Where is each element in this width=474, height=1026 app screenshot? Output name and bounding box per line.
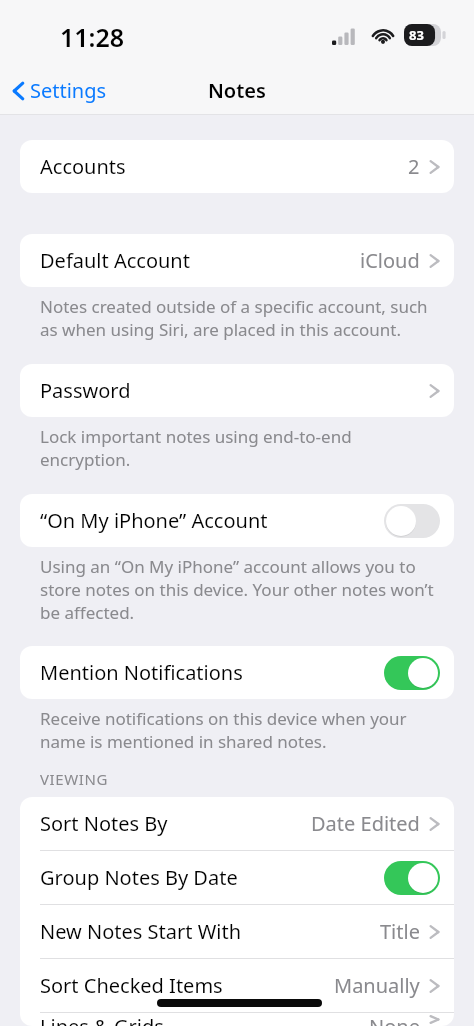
staticText: 11:28 bbox=[60, 20, 125, 54]
staticText: Password bbox=[40, 377, 131, 404]
button[interactable]: Default Account bbox=[20, 234, 454, 287]
staticText: iCloud bbox=[360, 247, 420, 274]
staticText: Group Notes By Date bbox=[40, 864, 238, 891]
button[interactable]: Password bbox=[20, 364, 454, 417]
button[interactable]: Toggle on bbox=[384, 861, 440, 895]
button[interactable]: Toggle off bbox=[384, 504, 440, 538]
staticText: Using an “On My iPhone” account allows y… bbox=[40, 555, 438, 624]
button[interactable]: Sort Checked Items bbox=[20, 959, 454, 1012]
staticText: Lines & Grids bbox=[40, 1013, 164, 1026]
staticText: Notes created outside of a specific acco… bbox=[40, 295, 438, 341]
staticText: Default Account bbox=[40, 247, 190, 274]
button[interactable]: “On My iPhone” Account bbox=[20, 494, 454, 547]
staticText: 2 bbox=[408, 153, 420, 180]
staticText: Date Edited bbox=[311, 810, 420, 837]
button[interactable]: Settings bbox=[0, 71, 117, 110]
staticText: None bbox=[369, 1013, 420, 1026]
staticText: Accounts bbox=[40, 153, 126, 180]
button[interactable]: Accounts bbox=[20, 140, 454, 193]
button[interactable]: Mention Notifications bbox=[20, 646, 454, 699]
staticText: “On My iPhone” Account bbox=[40, 507, 268, 534]
button[interactable]: Lines & Grids bbox=[20, 1013, 454, 1026]
staticText: Sort Notes By bbox=[40, 810, 168, 837]
staticText: New Notes Start With bbox=[40, 918, 242, 945]
staticText: Manually bbox=[334, 972, 420, 999]
staticText: Title bbox=[380, 918, 420, 945]
staticText: Settings bbox=[30, 77, 107, 104]
staticText: VIEWING bbox=[40, 769, 108, 789]
staticText: Mention Notifications bbox=[40, 659, 243, 686]
button[interactable]: Group Notes By Date bbox=[20, 851, 454, 904]
button[interactable]: Sort Notes By bbox=[20, 797, 454, 850]
button[interactable]: Toggle on bbox=[384, 656, 440, 690]
staticText: Receive notifications on this device whe… bbox=[40, 707, 438, 753]
button[interactable]: New Notes Start With bbox=[20, 905, 454, 958]
staticText: Notes bbox=[208, 77, 266, 104]
staticText: Sort Checked Items bbox=[40, 972, 223, 999]
staticText: Lock important notes using end-to-end en… bbox=[40, 425, 438, 471]
staticText: 83 bbox=[409, 26, 424, 44]
